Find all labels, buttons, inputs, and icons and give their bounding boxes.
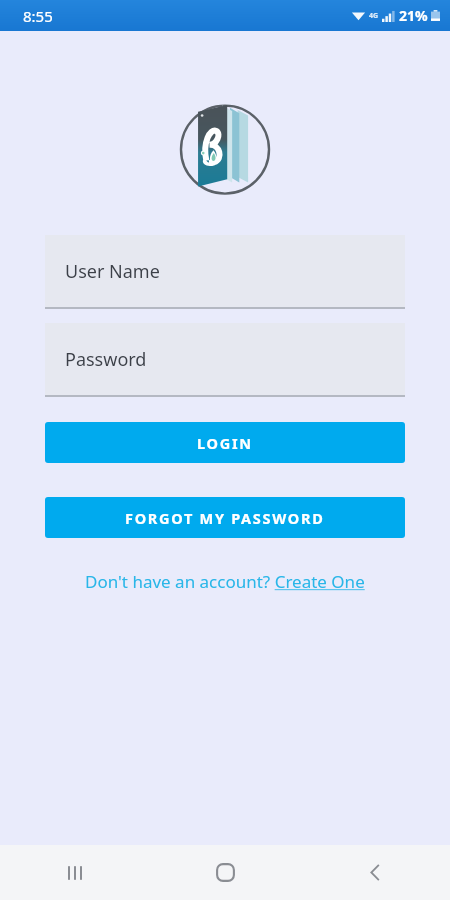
staticText: 4G xyxy=(369,11,379,21)
button[interactable]: Don't have an account? Create One xyxy=(45,566,405,596)
staticText: Password xyxy=(65,347,147,372)
button[interactable]: User Name xyxy=(45,235,405,309)
staticText: 8:55 xyxy=(23,6,53,26)
staticText: 21% xyxy=(399,6,428,25)
button[interactable]: Recent apps xyxy=(0,845,150,900)
button[interactable]: FORGOT MY PASSWORD xyxy=(45,497,405,538)
staticText: FORGOT MY PASSWORD xyxy=(125,508,325,528)
button[interactable]: Home xyxy=(150,845,300,900)
staticText: User Name xyxy=(65,259,160,284)
staticText: Don't have an account? Create One xyxy=(85,570,365,593)
staticText: LOGIN xyxy=(197,433,253,453)
button[interactable]: LOGIN xyxy=(45,422,405,463)
button[interactable]: Back xyxy=(300,845,450,900)
button[interactable]: Password xyxy=(45,323,405,397)
